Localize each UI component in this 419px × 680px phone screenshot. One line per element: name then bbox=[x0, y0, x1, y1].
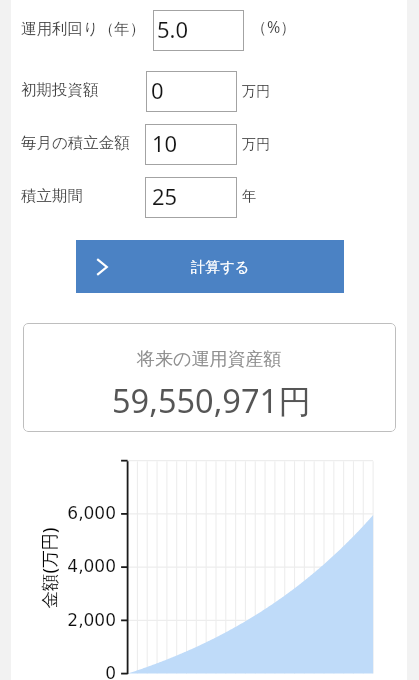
staticText: 積立期間 bbox=[21, 186, 83, 206]
staticText: 将来の運用資産額 bbox=[137, 348, 282, 371]
staticText: 6,000 bbox=[67, 503, 116, 523]
staticText: 0 bbox=[105, 663, 116, 680]
staticText: 2,000 bbox=[67, 610, 116, 630]
button[interactable]: 5.0 bbox=[153, 10, 244, 51]
button[interactable]: 計算を実行 bbox=[76, 240, 344, 293]
staticText: 計算する bbox=[191, 258, 250, 276]
button[interactable]: 将来の運用資産額 bbox=[23, 323, 396, 432]
staticText: 10 bbox=[152, 128, 178, 158]
button[interactable]: 10 bbox=[145, 124, 237, 165]
staticText: 運用利回り（年） bbox=[21, 19, 146, 39]
button[interactable]: 25 bbox=[145, 177, 237, 218]
staticText: 年 bbox=[242, 187, 257, 205]
other: 計算を実行 bbox=[96, 258, 108, 276]
button[interactable]: 0 bbox=[146, 71, 237, 112]
staticText: 25 bbox=[152, 181, 178, 211]
staticText: 0 bbox=[151, 75, 164, 105]
staticText: 毎月の積立金額 bbox=[21, 133, 130, 153]
staticText: 4,000 bbox=[67, 556, 116, 576]
staticText: 金額(万円) bbox=[36, 527, 60, 608]
staticText: （%） bbox=[251, 16, 297, 38]
staticText: 万円 bbox=[242, 135, 271, 153]
staticText: 59,550,971円 bbox=[112, 378, 311, 422]
staticText: 5.0 bbox=[157, 14, 189, 44]
staticText: 初期投資額 bbox=[21, 80, 99, 100]
staticText: 万円 bbox=[242, 82, 271, 100]
